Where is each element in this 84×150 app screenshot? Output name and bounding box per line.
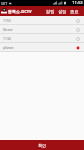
button[interactable]: 확인 — [0, 140, 84, 150]
button[interactable]: p0wan — [0, 43, 84, 52]
button[interactable]: 종료 — [70, 9, 79, 14]
staticText: 1153 — [3, 18, 11, 23]
staticText: Nome — [3, 27, 13, 32]
button[interactable]: App logo — [1, 8, 7, 14]
staticText: 몽특쇼-DCTV — [8, 9, 32, 14]
staticText: p0wan — [3, 45, 14, 50]
button[interactable]: 1134 — [0, 34, 84, 43]
staticText: 확인 — [38, 143, 46, 148]
staticText: 종료 — [70, 9, 79, 14]
staticText: 1134 — [3, 36, 11, 41]
staticText: 11:53 — [72, 0, 83, 6]
staticText: 설정 — [58, 9, 67, 14]
button[interactable]: Nome — [0, 25, 84, 34]
staticText: SKT — [1, 1, 8, 6]
button[interactable]: 알림 — [46, 9, 55, 14]
button[interactable]: 1153 — [0, 16, 84, 25]
button[interactable]: 설정 — [58, 9, 67, 14]
staticText: 알림 — [46, 9, 55, 14]
